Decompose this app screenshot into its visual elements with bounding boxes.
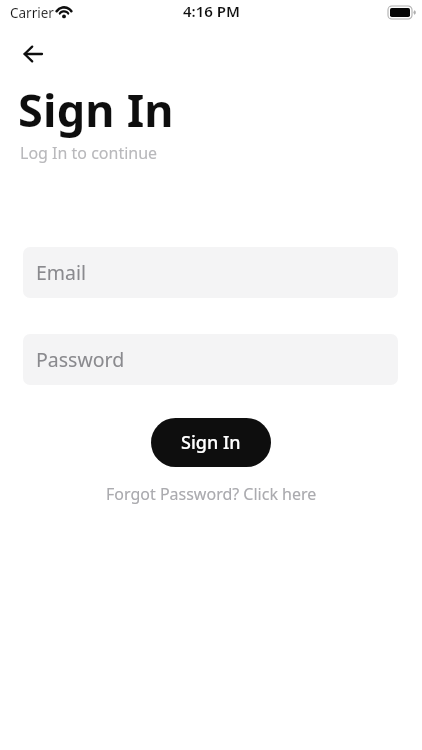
button[interactable] (22, 43, 44, 65)
staticText: Sign In (181, 430, 241, 455)
button[interactable]: Password (23, 334, 398, 385)
staticText: Carrier (10, 4, 54, 22)
staticText: Log In to continue (20, 142, 158, 164)
button[interactable]: Email (23, 247, 398, 298)
button[interactable]: Sign In (151, 418, 271, 467)
staticText: Email (36, 259, 87, 286)
button[interactable]: Forgot Password? Click here (106, 483, 317, 505)
staticText: 4:16 PM (183, 1, 240, 21)
staticText: Sign In (18, 79, 174, 140)
staticText: Password (36, 346, 125, 373)
